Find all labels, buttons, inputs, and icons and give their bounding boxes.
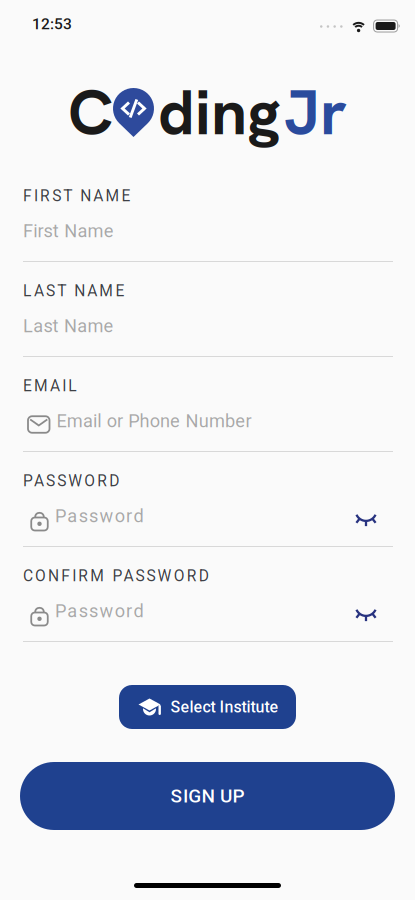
staticText: Last Name [23,315,114,337]
staticText: ding [158,70,280,154]
staticText: Select Institute [170,698,278,716]
button[interactable]: Show confirm password [354,602,393,619]
staticText: 12:53 [32,15,72,33]
staticText: EMAIL [23,377,76,395]
button[interactable]: Select Institute [119,685,296,729]
staticText: PASSWORD [23,472,119,490]
staticText: CONFIRM PASSWORD [23,567,209,585]
staticText: First Name [23,220,114,242]
staticText: Password [55,600,143,622]
staticText: Email or Phone Number [56,410,251,432]
staticText: C [68,70,113,154]
staticText: SIGN UP [171,785,244,807]
button[interactable]: SIGN UP [20,762,395,830]
staticText: FIRST NAME [23,187,130,205]
staticText: Password [55,505,143,527]
button[interactable]: Show password [354,507,393,524]
staticText: Jr [284,70,347,154]
staticText: LAST NAME [23,282,124,300]
